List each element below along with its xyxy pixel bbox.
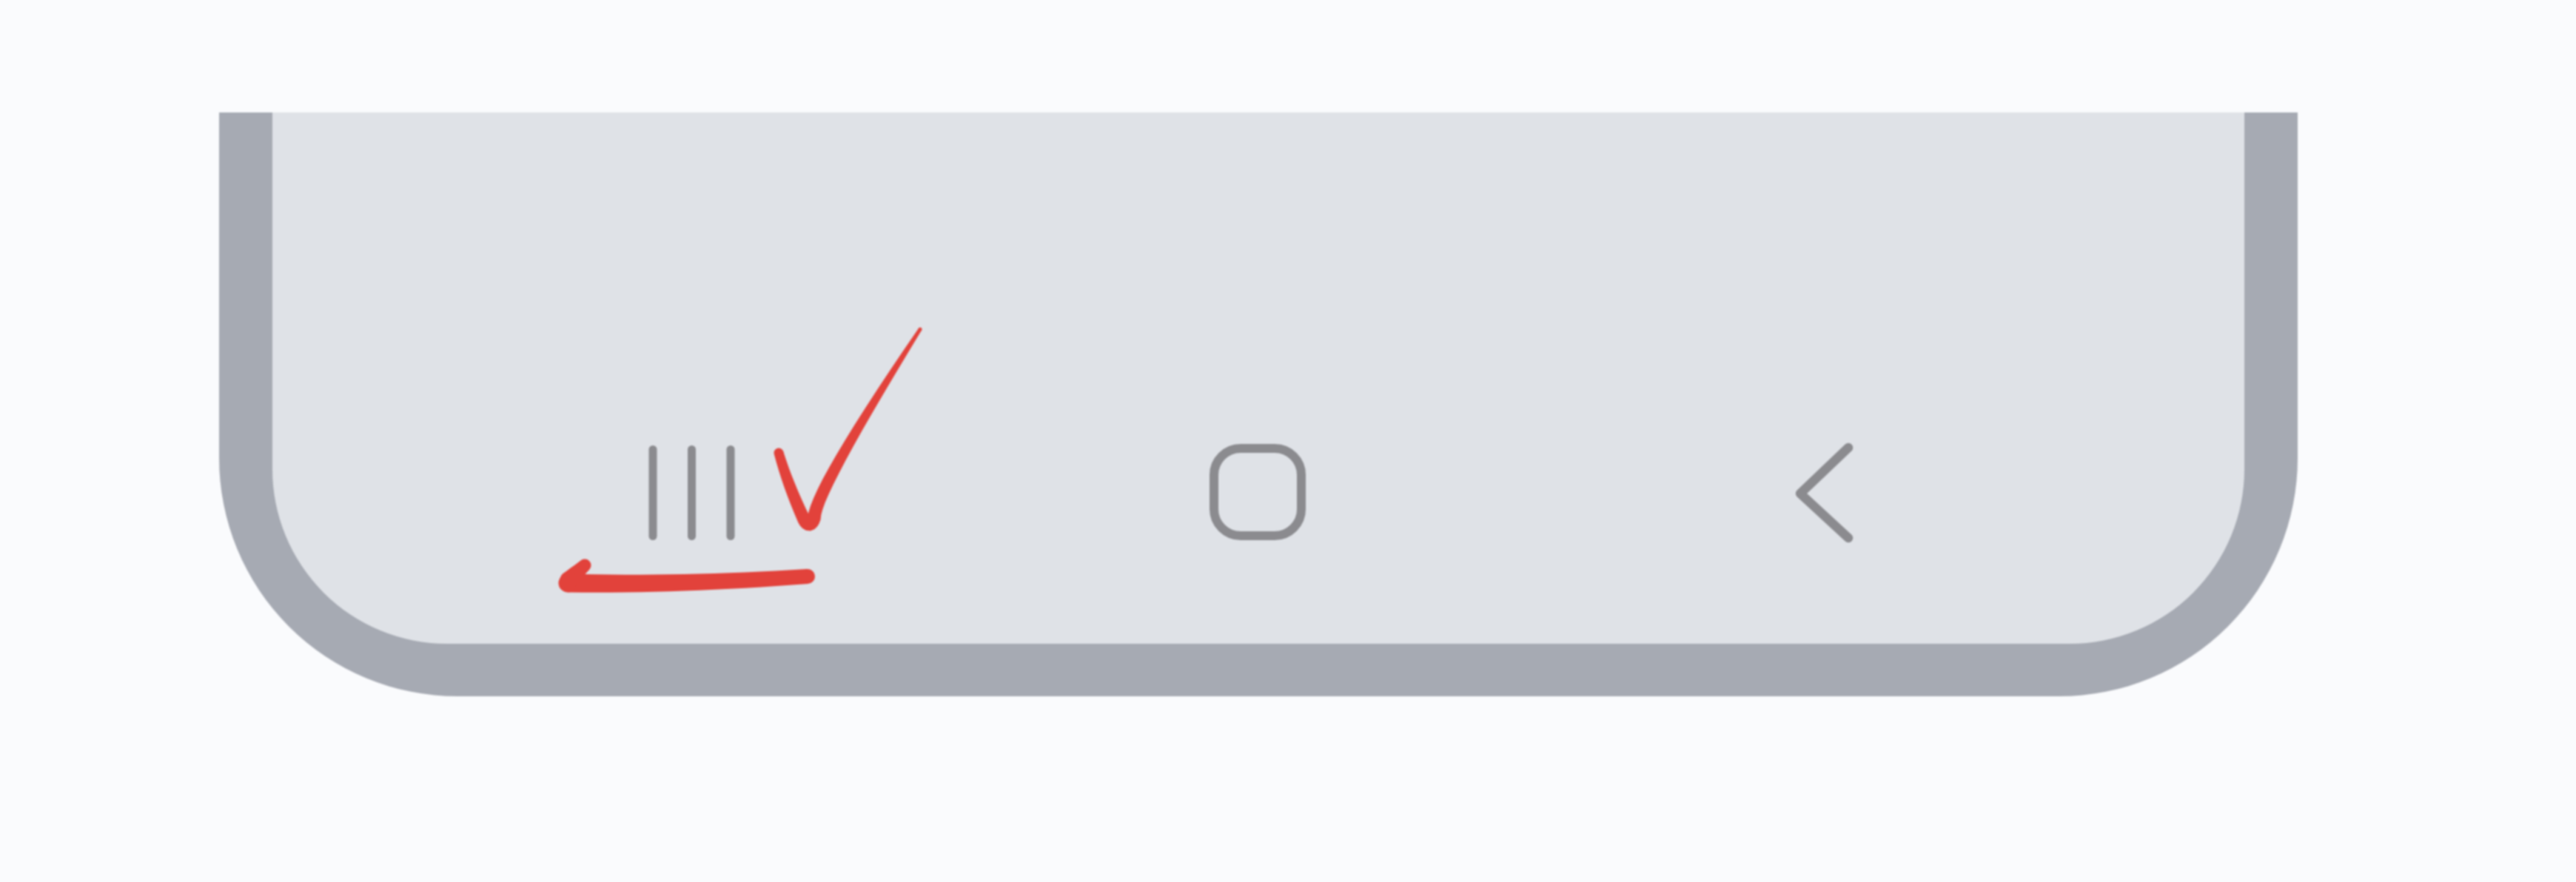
button[interactable]: Back xyxy=(1733,404,1916,582)
button[interactable]: Recent apps xyxy=(600,404,783,582)
button[interactable]: Home xyxy=(1166,404,1349,582)
